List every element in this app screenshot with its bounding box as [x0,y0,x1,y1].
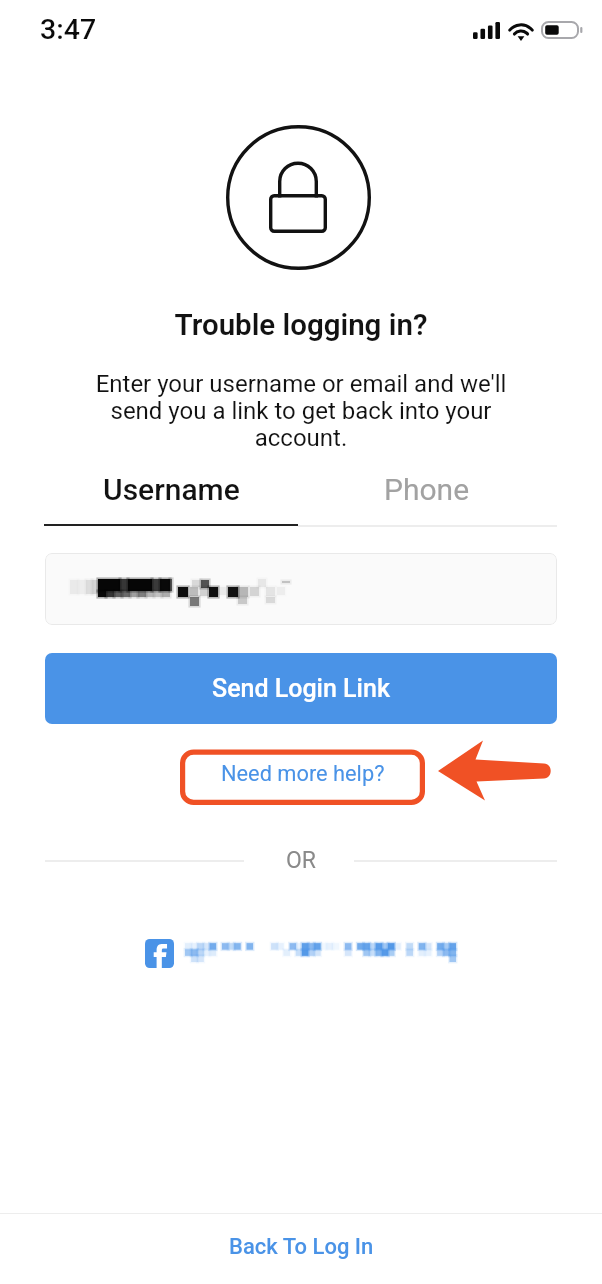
button[interactable]: Back To Log In [0,1212,602,1282]
button[interactable]: Need more help? [181,745,425,803]
staticText: Send Login Link [212,674,390,703]
staticText: Trouble logging in? [0,308,602,343]
button[interactable]: Phone [297,460,557,518]
staticText: Enter your username or email and we'll s… [0,370,602,452]
button[interactable]: Log in with Facebook [143,934,463,972]
staticText: OR [0,847,602,874]
staticText: Need more help? [221,761,385,787]
staticText: 3:47 [40,13,97,46]
staticText: Username [103,472,240,507]
button[interactable]: Username [45,460,297,518]
button[interactable]: Send Login Link [45,653,557,724]
button[interactable]: Username or email [45,553,557,625]
staticText: Back To Log In [229,1234,374,1260]
staticText: Phone [384,472,470,507]
